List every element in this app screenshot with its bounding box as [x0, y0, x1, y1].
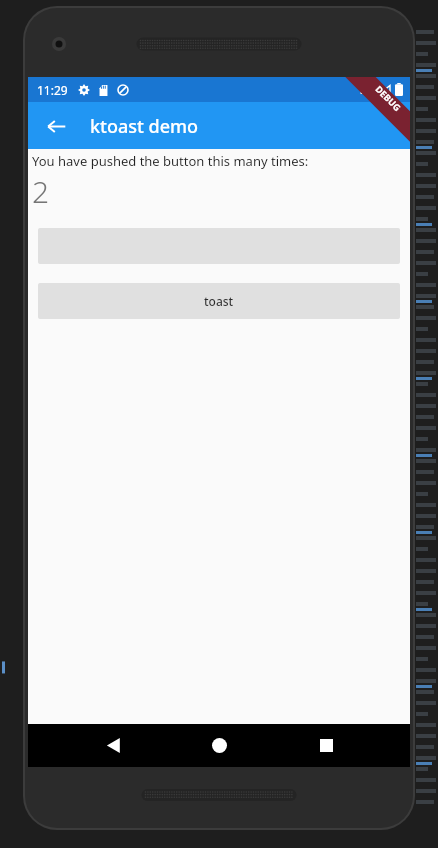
button[interactable]: Recent apps	[304, 724, 348, 767]
staticText: 2	[32, 171, 50, 212]
staticText: You have pushed the button this many tim…	[32, 152, 309, 170]
staticText: toast	[204, 293, 234, 309]
button[interactable]: Back	[36, 106, 76, 146]
staticText: ktoast demo	[90, 114, 199, 139]
staticText: LTE	[360, 84, 375, 96]
staticText: 11:29	[37, 82, 68, 98]
button[interactable]: Back	[91, 724, 135, 767]
staticText: DEBUG	[373, 83, 404, 113]
button[interactable]: Home	[197, 724, 241, 767]
button[interactable]: toast	[38, 283, 400, 319]
